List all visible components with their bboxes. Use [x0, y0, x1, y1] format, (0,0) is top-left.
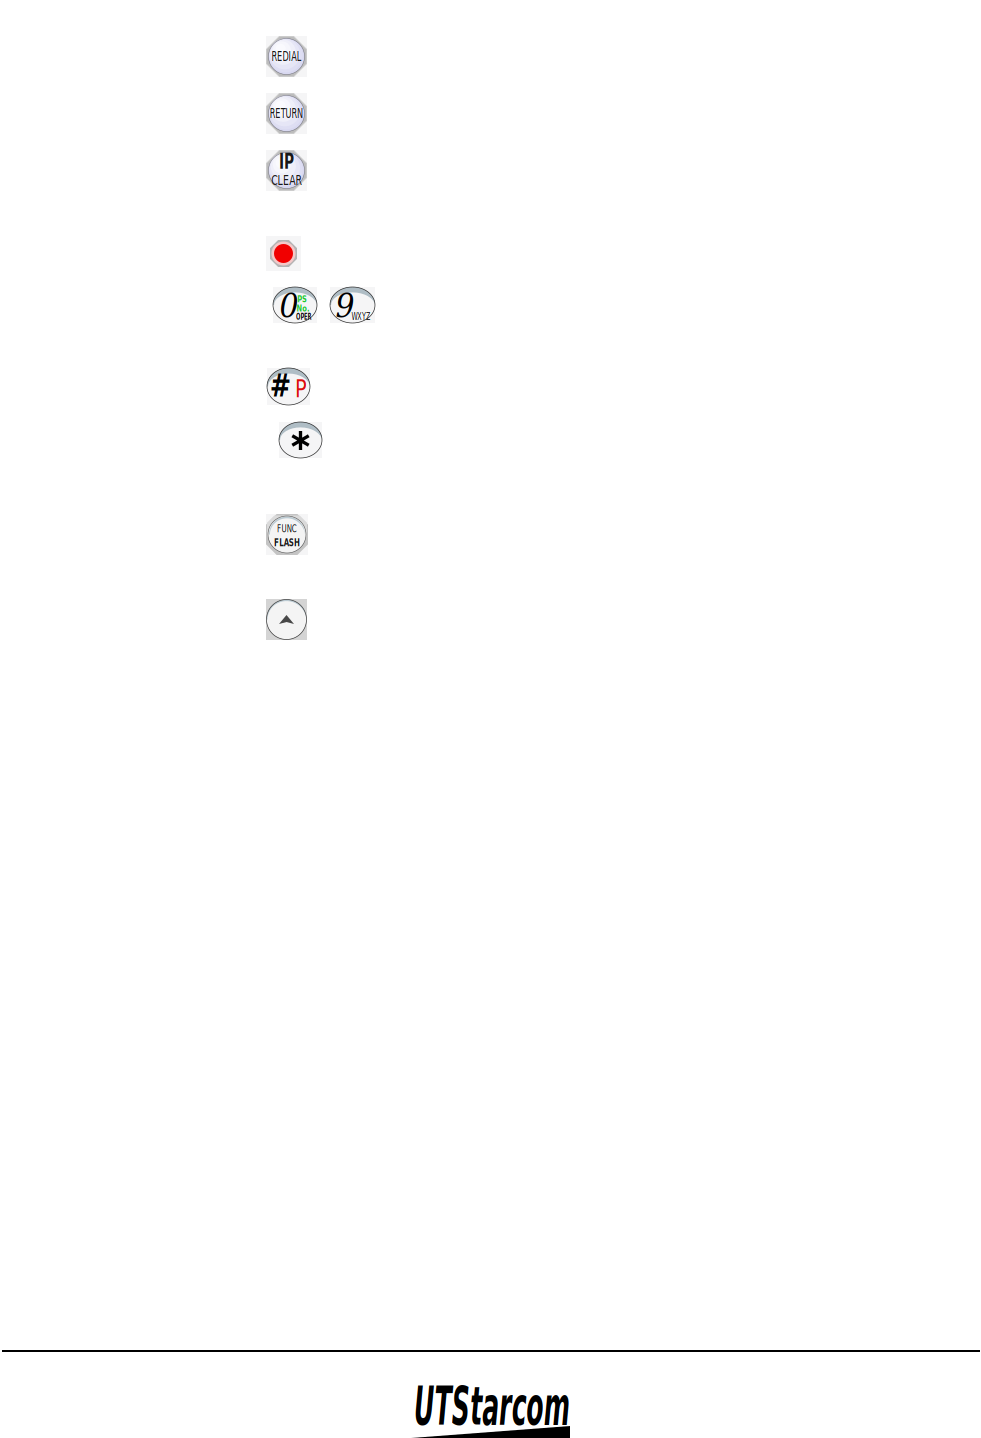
button[interactable]: Star key: [279, 422, 322, 458]
staticText: UT: [414, 1375, 486, 1437]
staticText: 0: [279, 287, 298, 325]
button[interactable]: Func Flash key: [266, 514, 308, 555]
button[interactable]: Message indicator: [266, 236, 301, 271]
staticText: CLEAR: [267, 173, 306, 188]
staticText: FUNC: [273, 522, 300, 535]
button[interactable]: Pound key: [267, 368, 310, 405]
staticText: P: [294, 374, 308, 403]
button[interactable]: Return key: [262, 93, 311, 134]
staticText: IP: [276, 149, 297, 174]
button[interactable]: Nine key: [330, 286, 375, 324]
button[interactable]: Zero key: [273, 286, 317, 324]
staticText: WXYZ: [346, 310, 375, 322]
staticText: OPER: [293, 312, 315, 321]
staticText: Starcom: [486, 1375, 711, 1437]
staticText: 9: [335, 287, 354, 325]
staticText: PS: [296, 293, 308, 304]
button[interactable]: Redial key: [264, 36, 308, 77]
staticText: #: [267, 367, 294, 404]
button[interactable]: Scroll up key: [266, 599, 307, 640]
staticText: RETURN: [262, 106, 311, 121]
staticText: FLASH: [269, 536, 304, 549]
button[interactable]: IP Clear key: [266, 150, 307, 191]
staticText: No.: [295, 303, 311, 314]
staticText: REDIAL: [264, 49, 308, 64]
